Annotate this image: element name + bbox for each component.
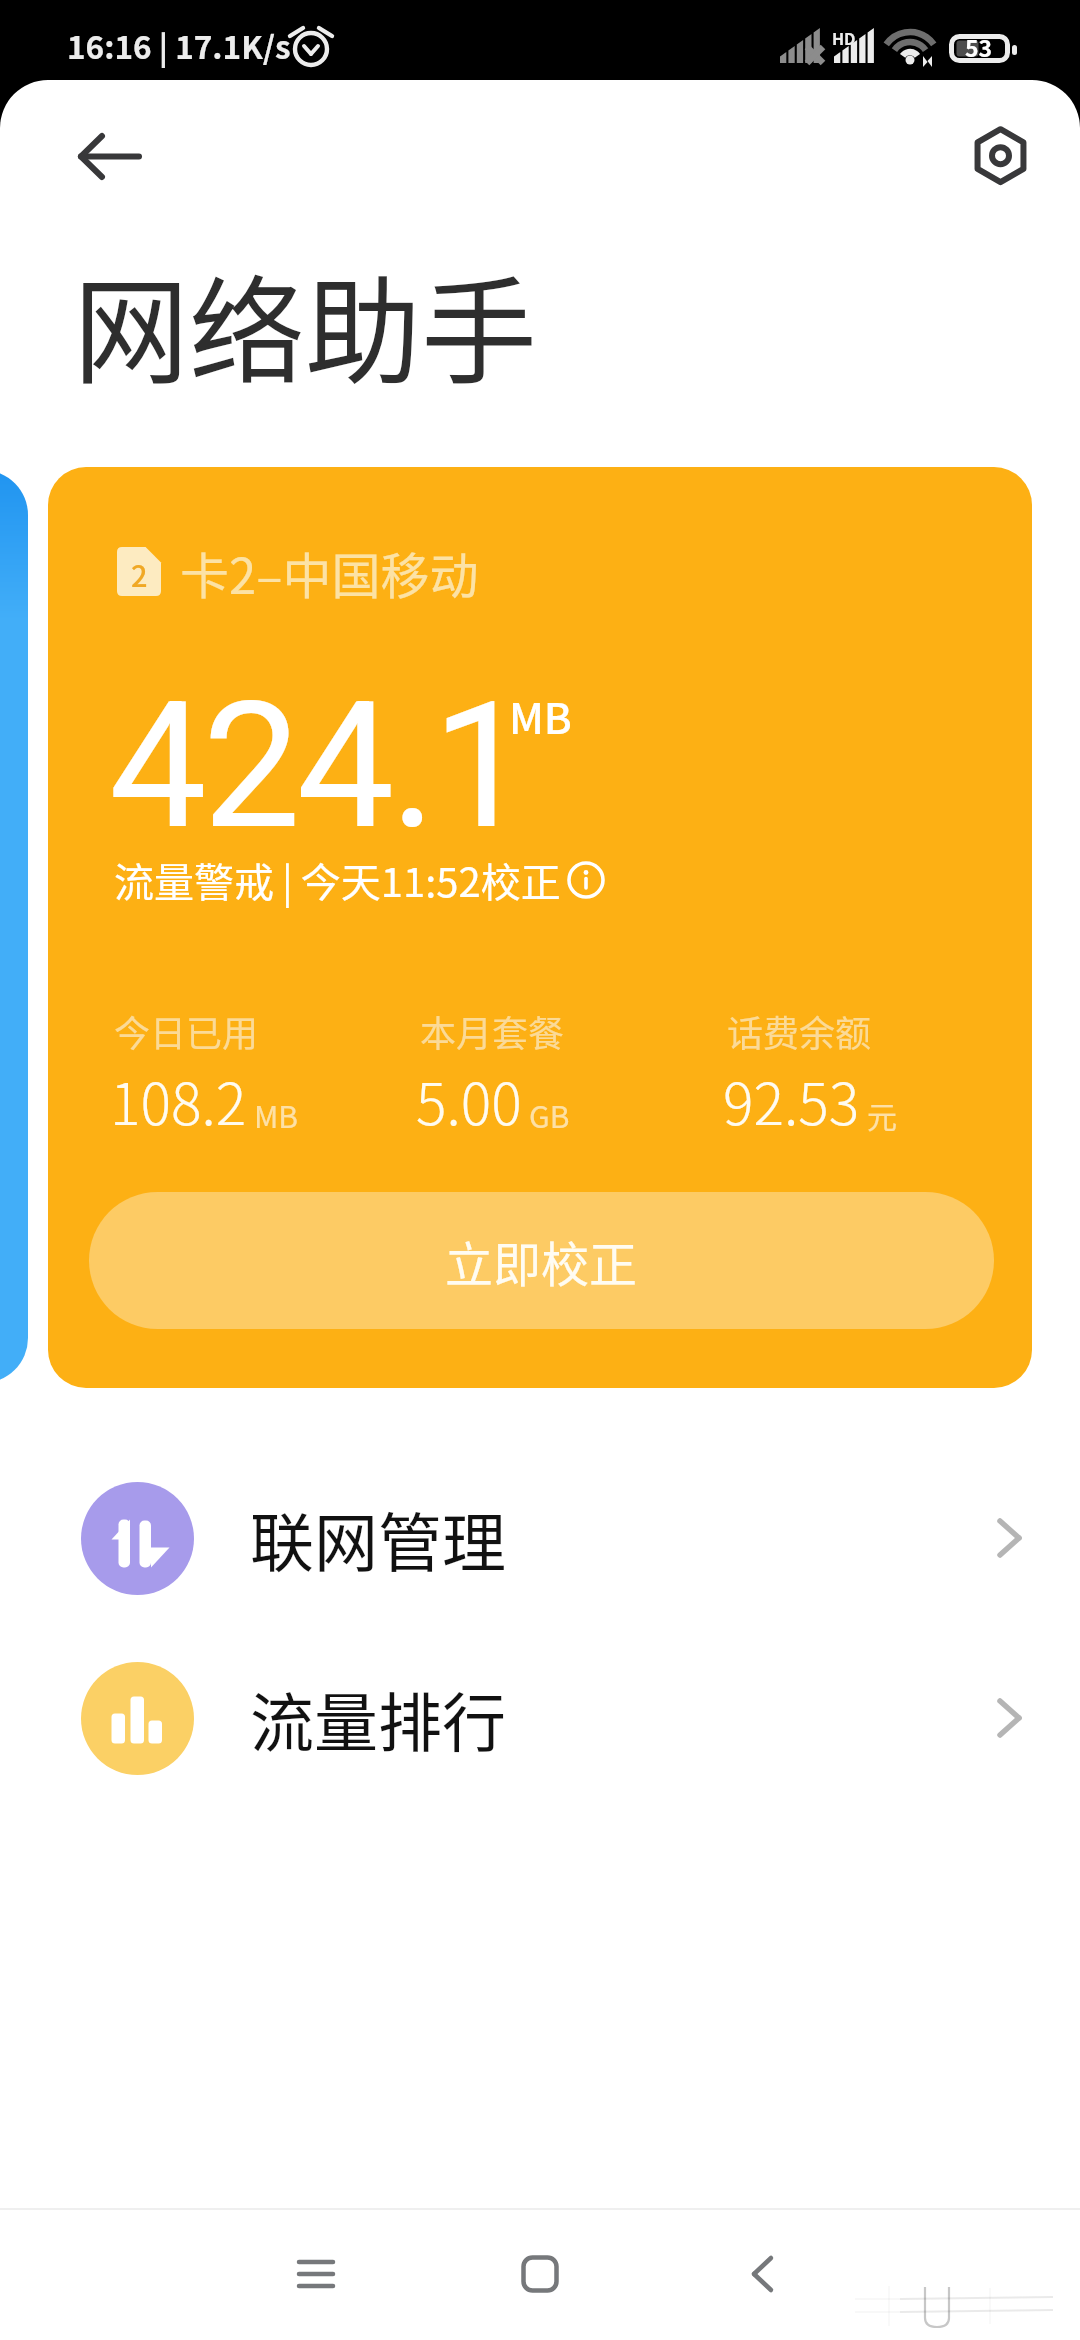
staticText: 联网管理 [250,1492,506,1585]
button[interactable]: 2 [48,467,1032,1388]
button[interactable]: Recents [256,2214,376,2334]
staticText: 立即校正 [445,1226,638,1296]
staticText: MB [254,1093,299,1136]
staticText: GB [529,1093,570,1136]
staticText: 流量警戒 | 今天11:52校正 [114,851,561,909]
staticText: 424.1 [109,665,527,869]
button[interactable]: Previous SIM card [0,470,28,1383]
button[interactable]: 流量排行 [0,1628,1080,1808]
staticText: 5.00 [416,1059,522,1142]
staticText: 话费余额 [727,1005,872,1057]
button[interactable]: Home [480,2214,600,2334]
staticText: HD [832,26,856,49]
button[interactable]: 立即校正 [89,1192,994,1329]
button[interactable]: Settings [954,110,1046,202]
staticText: MB [509,685,572,746]
staticText: 53 [965,30,993,63]
staticText: 流量排行 [250,1672,506,1765]
staticText: 今日已用 [114,1005,259,1057]
staticText: 108.2 [110,1059,247,1142]
staticText: 2 [131,553,148,595]
staticText: 92.53 [723,1059,860,1142]
button[interactable]: Back [52,110,148,202]
staticText: 元 [867,1093,897,1136]
button[interactable]: Back [706,2214,826,2334]
staticText: 16:16 | 17.1K/s [67,22,291,68]
button[interactable]: 联网管理 [0,1448,1080,1628]
staticText: 本月套餐 [420,1005,565,1057]
staticText: 网络助手 [73,239,537,407]
staticText: 卡2–中国移动 [180,537,479,608]
